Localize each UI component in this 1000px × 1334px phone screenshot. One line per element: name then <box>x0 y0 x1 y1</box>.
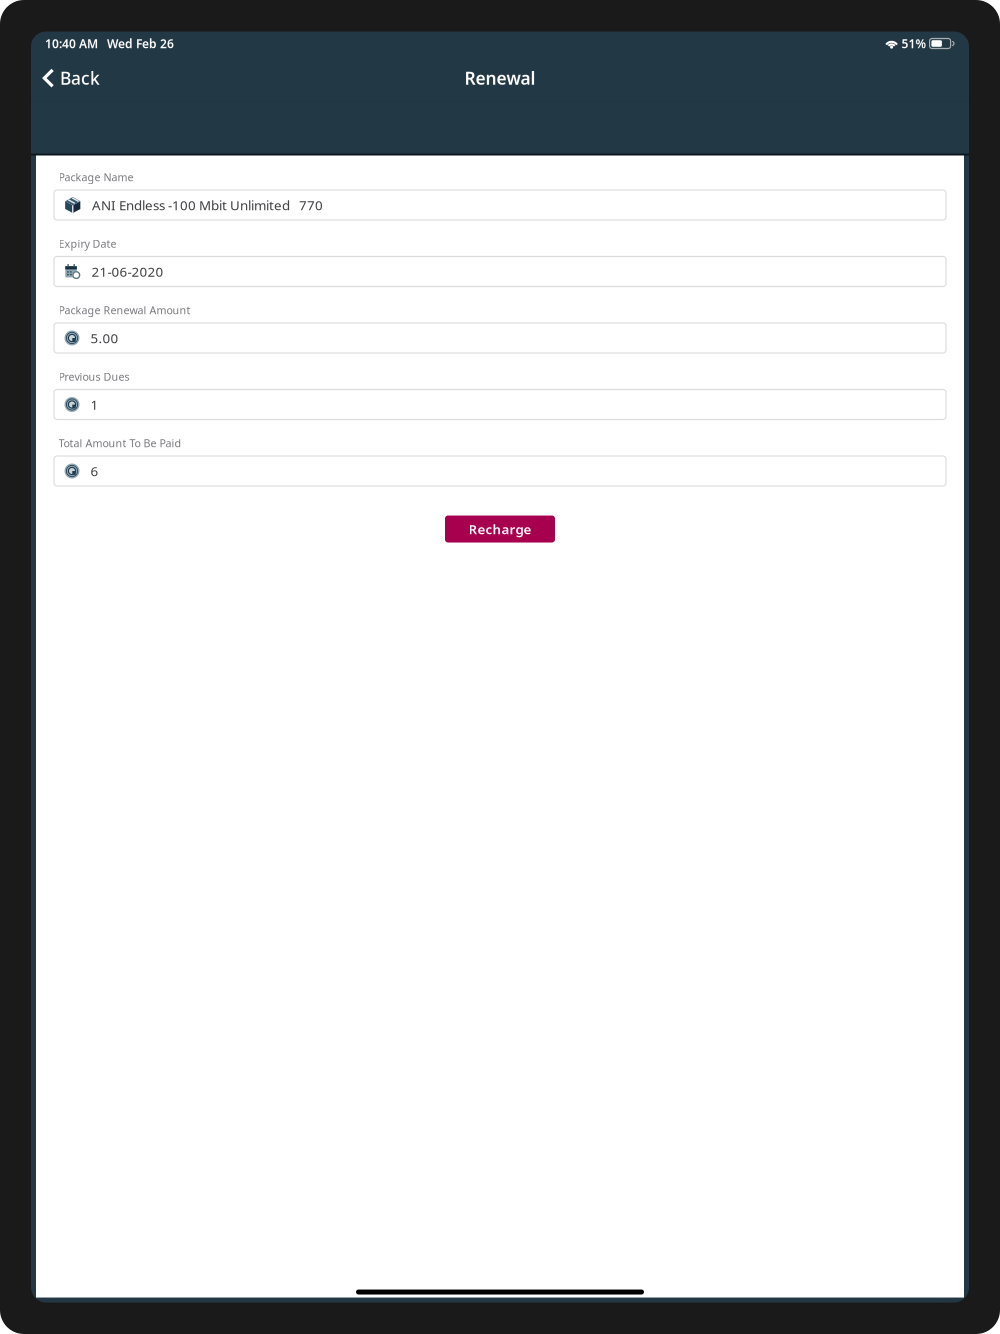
staticText: Expiry Date <box>58 236 116 251</box>
staticText: 5.00 <box>90 329 118 347</box>
button[interactable]: Recharge <box>445 515 555 542</box>
staticText: 10:40 AM <box>45 35 98 51</box>
staticText: Total Amount To Be Paid <box>58 436 181 450</box>
staticText: 51% <box>899 35 930 51</box>
button[interactable]: ANI Endless -100 Mbit Unlimited 770 <box>54 190 946 220</box>
button[interactable]: 1 <box>54 389 946 419</box>
staticText: Package Renewal Amount <box>58 303 190 317</box>
button[interactable]: 21-06-2020 <box>54 256 946 286</box>
staticText: Recharge <box>468 520 531 538</box>
button[interactable]: 6 <box>54 456 946 486</box>
staticText: ANI Endless -100 Mbit Unlimited 770 <box>92 196 323 214</box>
staticText: Back <box>60 66 100 89</box>
staticText: Package Name <box>58 170 133 184</box>
staticText: Renewal <box>464 66 535 89</box>
button[interactable]: Back <box>31 61 112 95</box>
staticText: 6 <box>90 462 98 480</box>
staticText: Wed Feb 26 <box>98 35 174 51</box>
staticText: 1 <box>90 396 98 413</box>
staticText: 21-06-2020 <box>91 263 163 280</box>
staticText: Previous Dues <box>58 369 129 384</box>
button[interactable]: 5.00 <box>54 323 946 353</box>
